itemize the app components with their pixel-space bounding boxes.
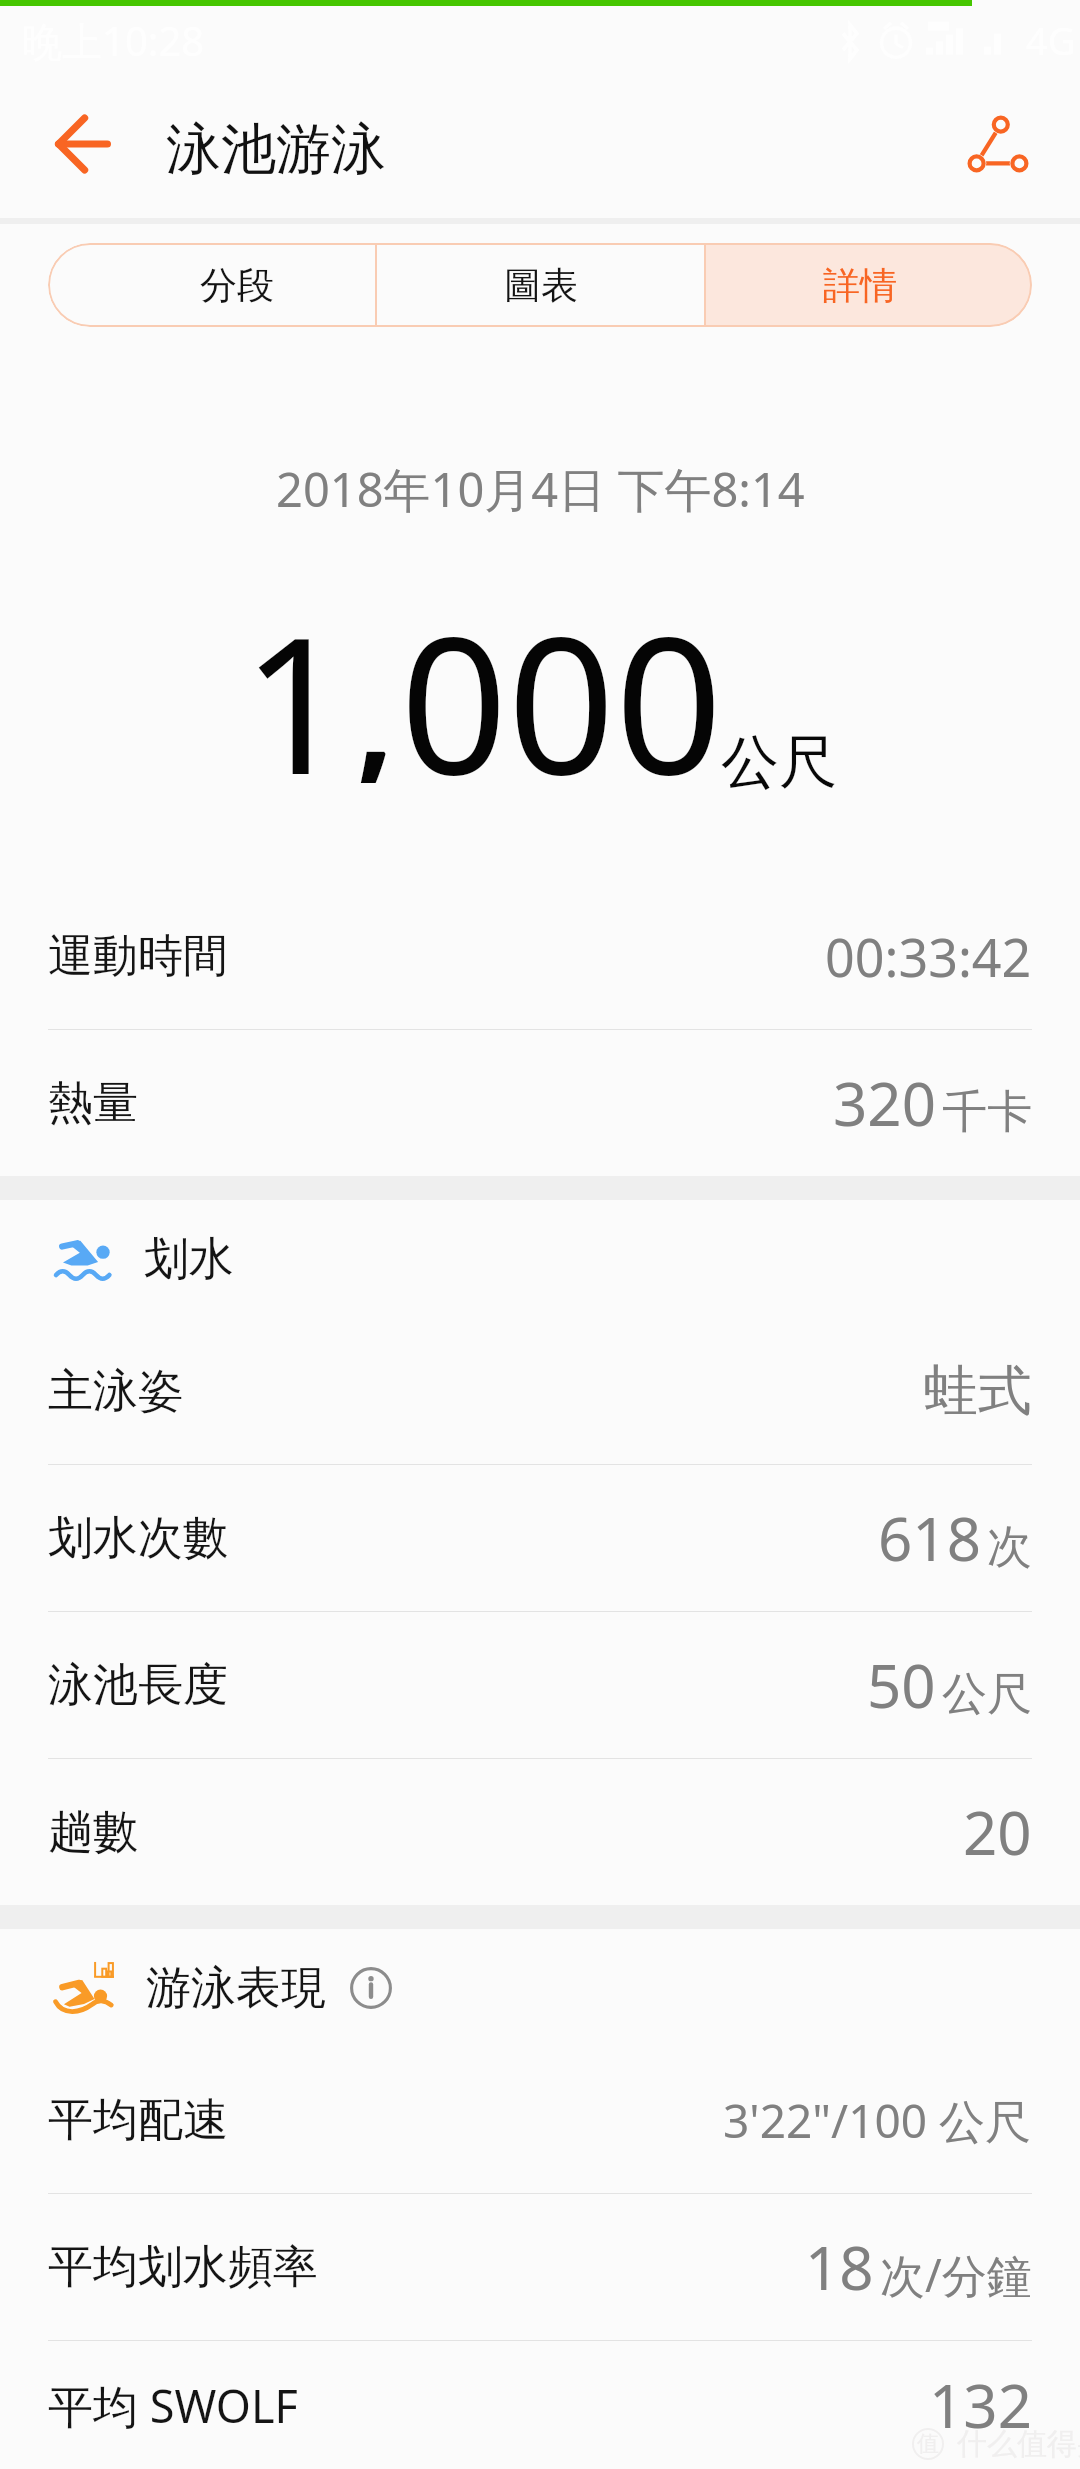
staticText: 划水 bbox=[144, 1231, 234, 1288]
staticText: 游泳表現 bbox=[146, 1960, 326, 2017]
button[interactable]: 圖表 bbox=[377, 243, 704, 327]
staticText: 次/分鐘 bbox=[880, 2244, 1032, 2305]
staticText: 平均 SWOLF bbox=[48, 2375, 298, 2436]
staticText: 趟數 bbox=[48, 1804, 138, 1861]
button[interactable]: 趟數 bbox=[0, 1759, 1080, 1905]
staticText: 次 bbox=[987, 1519, 1032, 1576]
staticText: 划水次數 bbox=[48, 1510, 228, 1567]
staticText: 公尺 bbox=[942, 1666, 1032, 1723]
staticText: 值 bbox=[917, 2430, 939, 2458]
staticText: 平均配速 bbox=[48, 2092, 228, 2149]
staticText: 平均划水頻率 bbox=[48, 2239, 318, 2296]
button[interactable]: 主泳姿 bbox=[0, 1318, 1080, 1464]
staticText: 圖表 bbox=[504, 262, 578, 309]
staticText: 20 bbox=[963, 1791, 1032, 1873]
staticText: 3'22"/100 公尺 bbox=[723, 2089, 1032, 2152]
button[interactable]: 平均配速 bbox=[0, 2047, 1080, 2193]
staticText: 泳池長度 bbox=[48, 1657, 228, 1714]
staticText: 什么值得买 bbox=[957, 2425, 1080, 2463]
staticText: 320 bbox=[833, 1062, 936, 1144]
button[interactable]: 平均划水頻率 bbox=[0, 2194, 1080, 2340]
button[interactable]: 熱量 bbox=[0, 1030, 1080, 1176]
staticText: 2018年10月4日 下午8:14 bbox=[276, 457, 805, 521]
staticText: 分段 bbox=[200, 262, 274, 309]
staticText: 詳情 bbox=[823, 262, 897, 309]
staticText: 50 bbox=[867, 1644, 936, 1726]
staticText: 公尺 bbox=[721, 726, 837, 799]
staticText: 泳池游泳 bbox=[166, 115, 386, 184]
staticText: 132 bbox=[929, 2364, 1032, 2446]
staticText: 千卡 bbox=[942, 1084, 1032, 1141]
staticText: 618 bbox=[878, 1497, 981, 1579]
button[interactable]: 詳情 bbox=[706, 243, 1032, 327]
staticText: 運動時間 bbox=[48, 928, 228, 985]
staticText: 熱量 bbox=[48, 1075, 138, 1132]
staticText: 00:33:42 bbox=[825, 921, 1032, 992]
staticText: 18 bbox=[805, 2226, 874, 2308]
staticText: 1,000 bbox=[242, 573, 723, 783]
button[interactable]: 平均 SWOLF bbox=[0, 2341, 1080, 2469]
button[interactable]: 分段 bbox=[48, 243, 375, 327]
button[interactable]: 運動時間 bbox=[0, 883, 1080, 1029]
button[interactable]: Back bbox=[27, 88, 139, 200]
staticText: 蛙式 bbox=[924, 1357, 1032, 1425]
staticText: 主泳姿 bbox=[48, 1363, 183, 1420]
button[interactable]: 划水次數 bbox=[0, 1465, 1080, 1611]
button[interactable]: Share bbox=[942, 88, 1054, 200]
button[interactable]: 泳池長度 bbox=[0, 1612, 1080, 1758]
